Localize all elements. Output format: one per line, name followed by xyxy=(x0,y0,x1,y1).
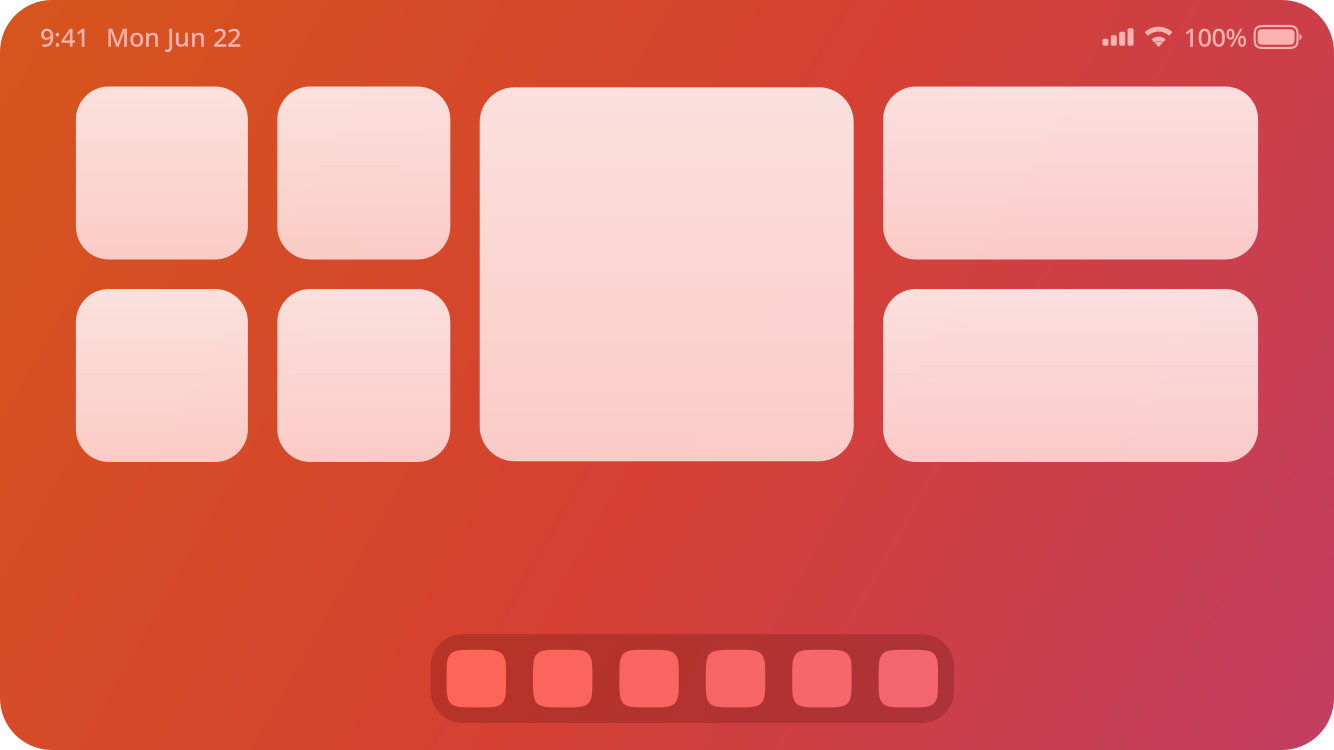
button[interactable]: Widget xyxy=(277,86,450,259)
button[interactable]: App xyxy=(879,650,938,707)
button[interactable]: App xyxy=(619,650,679,707)
button[interactable]: Widget xyxy=(480,87,854,461)
staticText: 100% xyxy=(1184,20,1248,54)
button[interactable]: App xyxy=(447,650,506,707)
button[interactable]: App xyxy=(706,650,765,707)
button[interactable]: Widget xyxy=(883,86,1258,259)
staticText: Mon Jun 22 xyxy=(106,20,241,54)
button[interactable]: Widget xyxy=(76,289,248,462)
button[interactable]: Widget xyxy=(76,86,248,259)
button[interactable]: App xyxy=(792,650,852,707)
button[interactable]: App xyxy=(533,650,592,707)
staticText: 9:41 xyxy=(40,20,89,54)
button[interactable]: Widget xyxy=(883,289,1258,462)
button[interactable]: Widget xyxy=(277,289,450,462)
